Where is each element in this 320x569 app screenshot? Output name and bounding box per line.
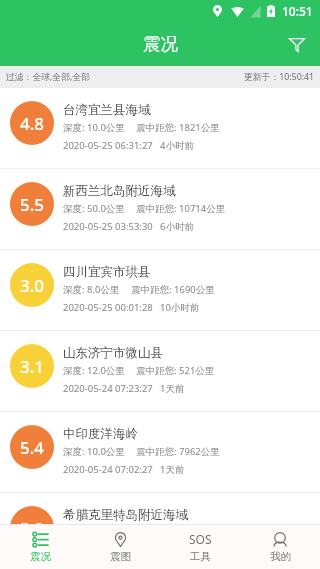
button[interactable]: 3.1 (0, 331, 320, 411)
staticText: 震中距您: 7962公里 (136, 445, 220, 458)
button[interactable]: 5.4 (0, 412, 320, 492)
staticText: 震图 (110, 550, 131, 563)
staticText: 2020-05-24 07:23:27 (63, 382, 153, 395)
staticText: 更新于：10:50:41 (244, 71, 315, 83)
staticText: 深度: 12.0公里 (63, 364, 125, 377)
staticText: 四川宜宾市珙县 (63, 264, 151, 280)
staticText: 震中距您: 1690公里 (131, 283, 215, 296)
staticText: SOS (189, 531, 212, 547)
staticText: 4小时前 (160, 139, 194, 152)
staticText: 3.1 (20, 355, 45, 378)
staticText: 10小时前 (160, 301, 200, 314)
button[interactable]: 震图 (80, 525, 160, 569)
staticText: 5.5 (20, 193, 45, 216)
staticText: 过滤：全球,全部,全部 (6, 71, 90, 83)
staticText: 震中距您: 10714公里 (136, 202, 226, 215)
staticText: 2020-05-24 07:02:27 (63, 463, 153, 476)
button[interactable]: 3.0 (0, 250, 320, 330)
button[interactable]: SOS (160, 525, 240, 569)
button[interactable]: Filter (276, 22, 320, 66)
staticText: 山东济宁市微山县 (63, 345, 163, 361)
button[interactable]: 我的 (240, 525, 320, 569)
staticText: 震况 (143, 33, 178, 55)
staticText: 震中距您: 1821公里 (136, 121, 220, 134)
staticText: 6小时前 (160, 220, 194, 233)
staticText: 深度: 8.0公里 (63, 283, 120, 296)
staticText: 2020-05-25 06:31:27 (63, 139, 153, 152)
button[interactable]: 5.0 (0, 493, 320, 524)
staticText: 新西兰北岛附近海域 (63, 183, 176, 199)
staticText: 中印度洋海岭 (63, 426, 138, 442)
staticText: 2020-05-25 03:53:30 (63, 220, 153, 233)
staticText: 台湾宜兰县海域 (63, 102, 151, 118)
staticText: 1天前 (160, 382, 185, 395)
button[interactable]: 5.5 (0, 169, 320, 249)
staticText: 5.4 (20, 436, 45, 459)
staticText: 震中距您: 521公里 (136, 364, 215, 377)
staticText: 1天前 (160, 463, 185, 476)
staticText: 震况 (30, 550, 51, 563)
staticText: 5.0 (20, 517, 45, 524)
staticText: 3.0 (20, 274, 45, 297)
staticText: 4.8 (20, 112, 45, 135)
button[interactable]: 4.8 (0, 88, 320, 168)
staticText: 希腊克里特岛附近海域 (63, 507, 188, 523)
staticText: 2020-05-25 00:01:28 (63, 301, 153, 314)
staticText: 工具 (190, 550, 211, 563)
staticText: 我的 (270, 550, 291, 563)
staticText: 10:51 (282, 3, 313, 19)
staticText: 深度: 10.0公里 (63, 121, 125, 134)
staticText: 深度: 50.0公里 (63, 202, 125, 215)
button[interactable]: 震况 (0, 525, 80, 569)
staticText: 深度: 10.0公里 (63, 445, 125, 458)
